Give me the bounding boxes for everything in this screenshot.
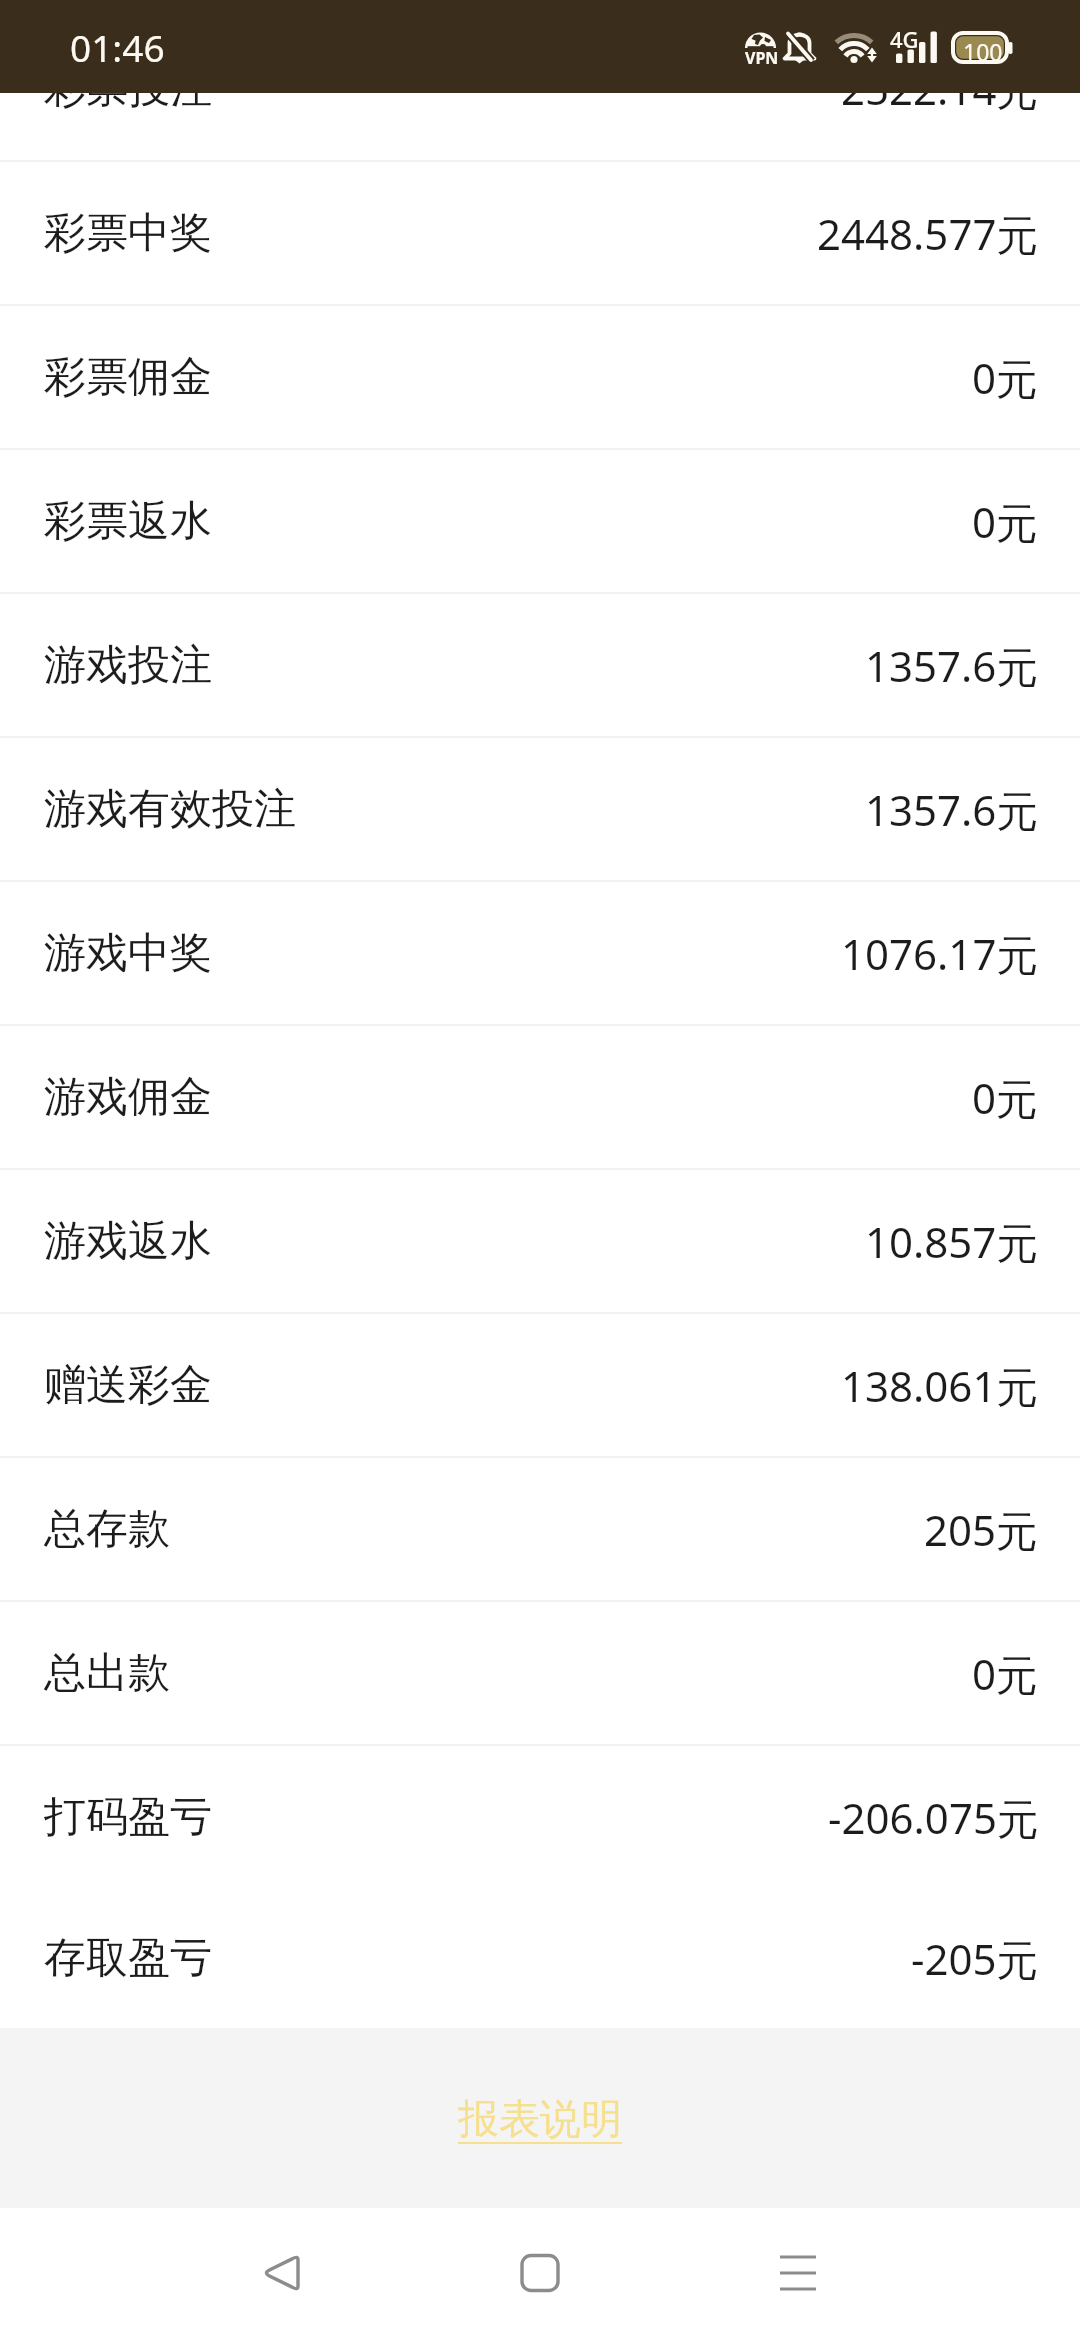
button[interactable]: 游戏中奖 [0,882,1080,1024]
staticText: 205元 [924,1501,1039,1558]
staticText: 彩票中奖 [44,207,212,260]
button[interactable]: 彩票佣金 [0,306,1080,448]
staticText: 4G [890,24,919,54]
button[interactable]: 存取盈亏 [0,1888,1080,2028]
button[interactable]: 游戏有效投注 [0,738,1080,880]
button[interactable]: 彩票投注 [0,16,1080,160]
button[interactable]: 游戏投注 [0,594,1080,736]
button[interactable]: 赠送彩金 [0,1314,1080,1456]
button[interactable]: Recent apps [748,2208,848,2340]
staticText: 总出款 [44,1647,170,1700]
staticText: 游戏有效投注 [44,783,296,836]
staticText: -205元 [911,1930,1039,1987]
staticText: 2448.577元 [817,205,1039,262]
staticText: 游戏返水 [44,1215,212,1268]
staticText: 游戏中奖 [44,927,212,980]
staticText: 1076.17元 [841,925,1039,982]
button[interactable]: 总存款 [0,1458,1080,1600]
staticText: 2522.14元 [841,60,1039,117]
staticText: 游戏佣金 [44,1071,212,1124]
staticText: 100 [963,36,1003,67]
staticText: VPN [745,47,779,69]
staticText: 彩票返水 [44,495,212,548]
staticText: 赠送彩金 [44,1359,212,1412]
button[interactable]: 游戏返水 [0,1170,1080,1312]
staticText: 报表说明 [458,2094,622,2146]
staticText: 0元 [972,1645,1039,1702]
staticText: 1357.6元 [865,781,1039,838]
button[interactable]: 总出款 [0,1602,1080,1744]
staticText: 打码盈亏 [44,1791,212,1844]
button[interactable]: Home [490,2208,590,2340]
staticText: 1357.6元 [865,637,1039,694]
button[interactable]: 游戏佣金 [0,1026,1080,1168]
button[interactable]: 报表说明 [428,2076,652,2164]
staticText: 0元 [972,349,1039,406]
staticText: 彩票投注 [44,62,212,115]
staticText: 存取盈亏 [44,1932,212,1985]
staticText: 总存款 [44,1503,170,1556]
button[interactable]: Back [230,2208,330,2340]
staticText: 彩票佣金 [44,351,212,404]
staticText: 01:46 [70,22,165,72]
staticText: 138.061元 [841,1357,1039,1414]
staticText: 0元 [972,1069,1039,1126]
staticText: 10.857元 [865,1213,1039,1270]
staticText: -206.075元 [828,1789,1039,1846]
staticText: 0元 [972,493,1039,550]
button[interactable]: 彩票返水 [0,450,1080,592]
staticText: 游戏投注 [44,639,212,692]
button[interactable]: 打码盈亏 [0,1746,1080,1888]
button[interactable]: 彩票中奖 [0,162,1080,304]
